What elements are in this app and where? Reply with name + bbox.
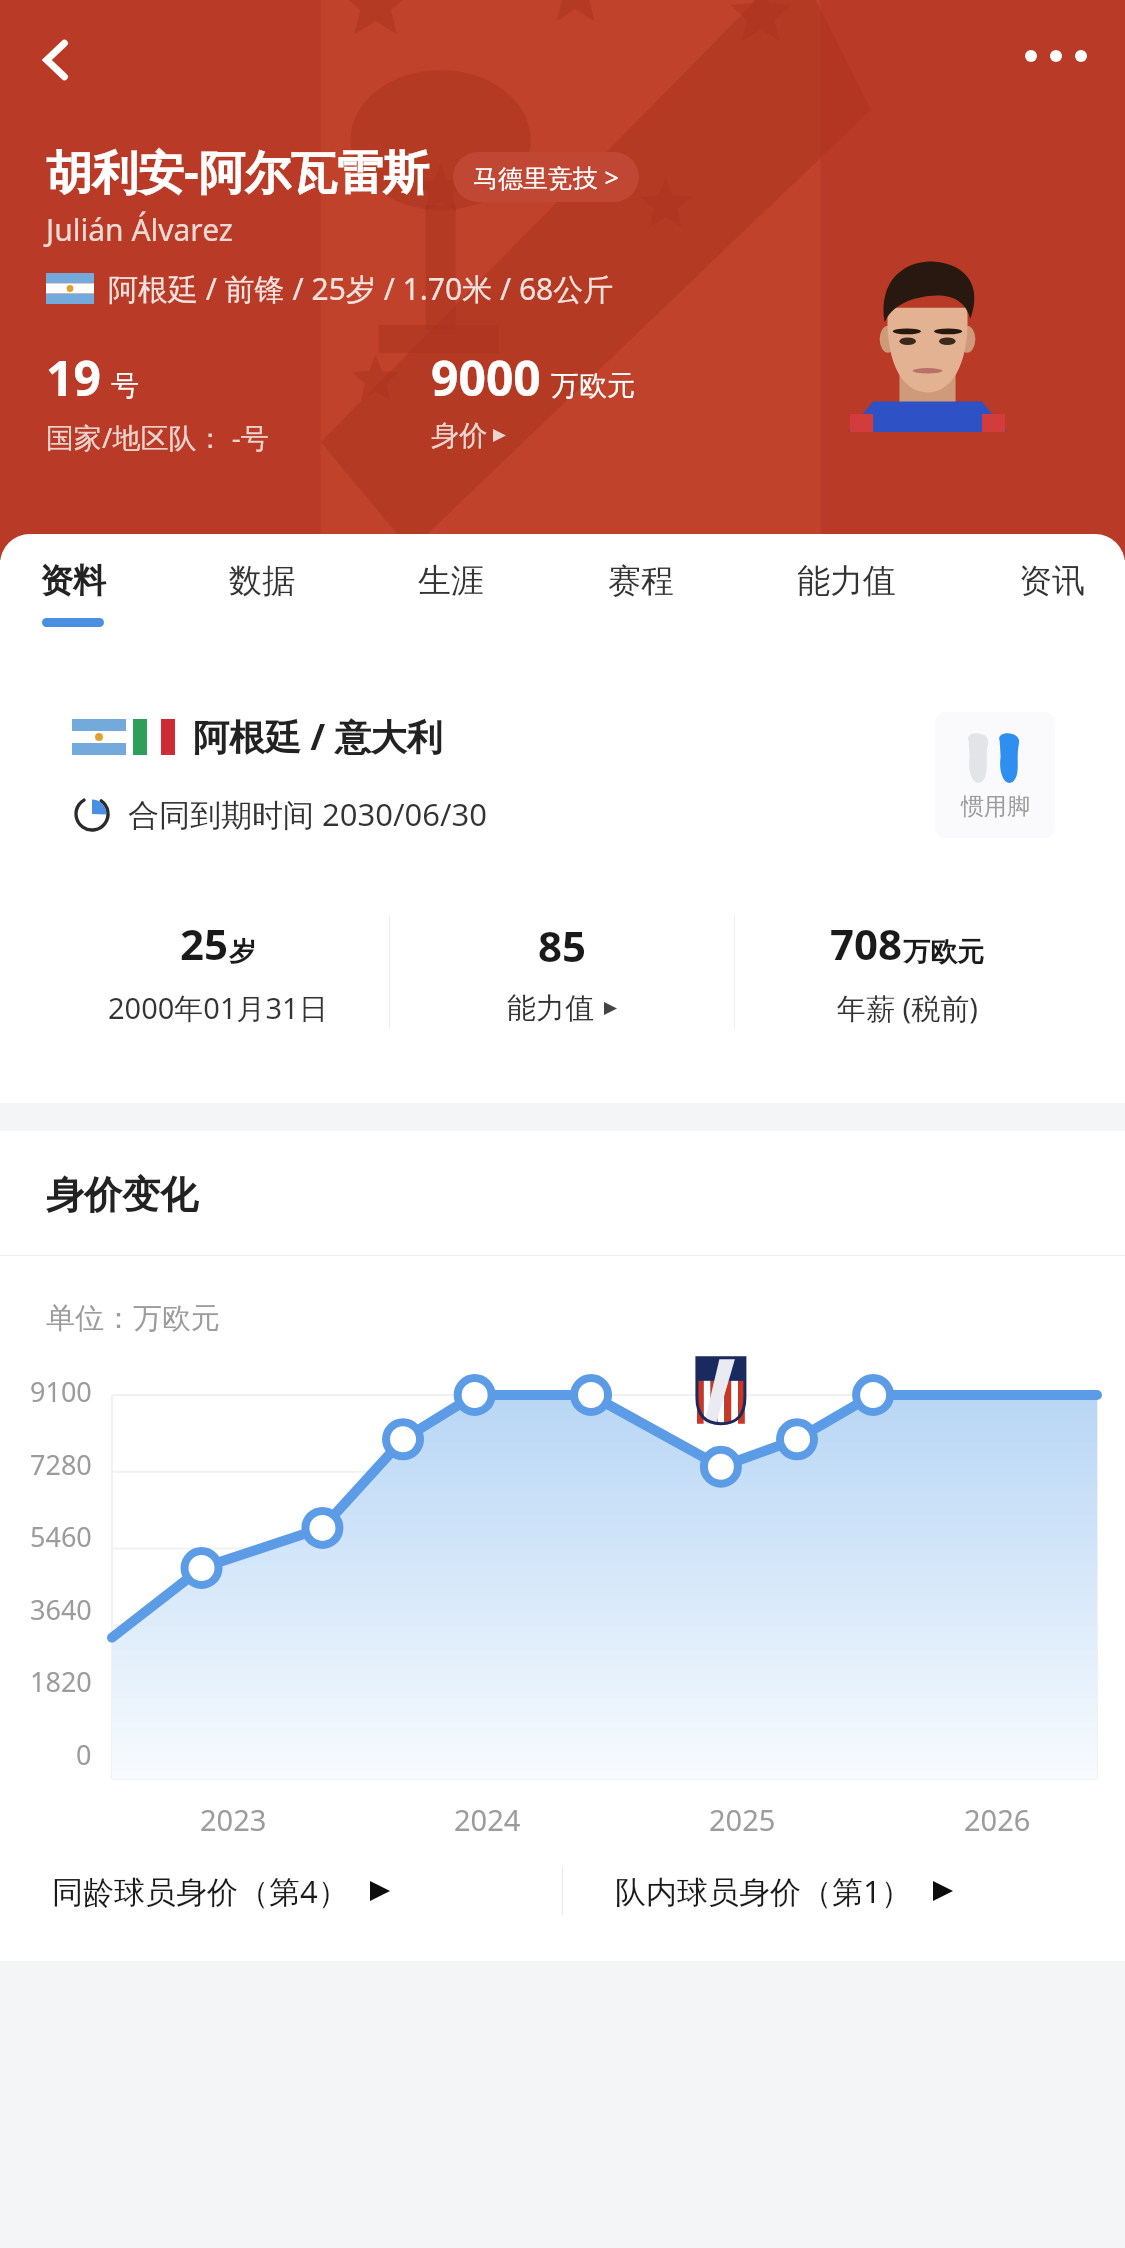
button[interactable]: 身价	[431, 418, 507, 453]
staticText: 3640	[30, 1591, 92, 1628]
staticText: 国家/地区队： -号	[46, 418, 269, 456]
button[interactable]: 生涯	[408, 560, 494, 627]
staticText: 阿根廷 / 意大利	[193, 712, 443, 761]
button[interactable]: 能力值	[787, 560, 906, 627]
staticText: 队内球员身价（第1）	[615, 1870, 912, 1912]
button[interactable]: 队内球员身价（第1）	[563, 1870, 1125, 1912]
staticText: 号	[111, 368, 139, 403]
staticText: 生涯	[418, 560, 484, 602]
staticText: 同龄球员身价（第4）	[52, 1870, 349, 1912]
button[interactable]: 数据	[219, 560, 305, 627]
staticText: 马德里竞技 >	[473, 160, 619, 194]
staticText: 岁	[229, 935, 256, 969]
staticText: 2025	[709, 1800, 776, 1839]
staticText: 数据	[229, 560, 295, 602]
staticText: 25	[180, 915, 229, 972]
button[interactable]: Back	[18, 22, 94, 98]
staticText: 惯用脚	[961, 792, 1030, 821]
button[interactable]: 资料	[30, 560, 116, 627]
staticText: 5460	[30, 1518, 92, 1555]
staticText: 2000年01月31日	[108, 988, 328, 1028]
staticText: 合同到期时间 2030/06/30	[128, 793, 487, 835]
staticText: 资料	[40, 560, 106, 602]
staticText: 阿根廷 / 前锋 / 25岁 / 1.70米 / 68公斤	[108, 268, 614, 309]
staticText: 胡利安-阿尔瓦雷斯	[46, 140, 429, 203]
button[interactable]: 同龄球员身价（第4）	[0, 1870, 562, 1912]
staticText: 单位：万欧元	[46, 1300, 220, 1337]
staticText: 2026	[964, 1800, 1031, 1839]
staticText: 2024	[454, 1800, 521, 1839]
button[interactable]: 马德里竞技 >	[453, 152, 639, 202]
staticText: 万欧元	[551, 368, 635, 403]
staticText: 赛程	[608, 560, 674, 602]
button[interactable]: 85	[390, 894, 734, 1049]
staticText: 9000	[431, 345, 541, 410]
staticText: 0	[76, 1736, 92, 1773]
staticText: 万欧元	[903, 935, 984, 969]
staticText: 7280	[30, 1446, 92, 1483]
button[interactable]: 25	[46, 894, 389, 1049]
button[interactable]: More options	[1015, 40, 1097, 72]
button[interactable]: Preferred foot	[935, 712, 1055, 838]
button[interactable]: 708	[735, 894, 1079, 1049]
staticText: 身价	[431, 418, 487, 453]
staticText: 能力值	[797, 560, 896, 602]
staticText: 资讯	[1019, 560, 1085, 602]
staticText: 1820	[30, 1663, 92, 1700]
staticText: 能力值	[507, 990, 594, 1027]
staticText: 2023	[200, 1800, 267, 1839]
staticText: 19	[46, 345, 101, 410]
staticText: 85	[538, 917, 587, 974]
button[interactable]: 资讯	[1009, 560, 1095, 627]
staticText: 708	[830, 915, 903, 972]
button[interactable]: 赛程	[598, 560, 684, 627]
staticText: 身价变化	[46, 1171, 198, 1219]
staticText: 年薪 (税前)	[837, 988, 978, 1028]
staticText: 9100	[30, 1373, 92, 1410]
staticText: Julián Álvarez	[46, 209, 233, 250]
